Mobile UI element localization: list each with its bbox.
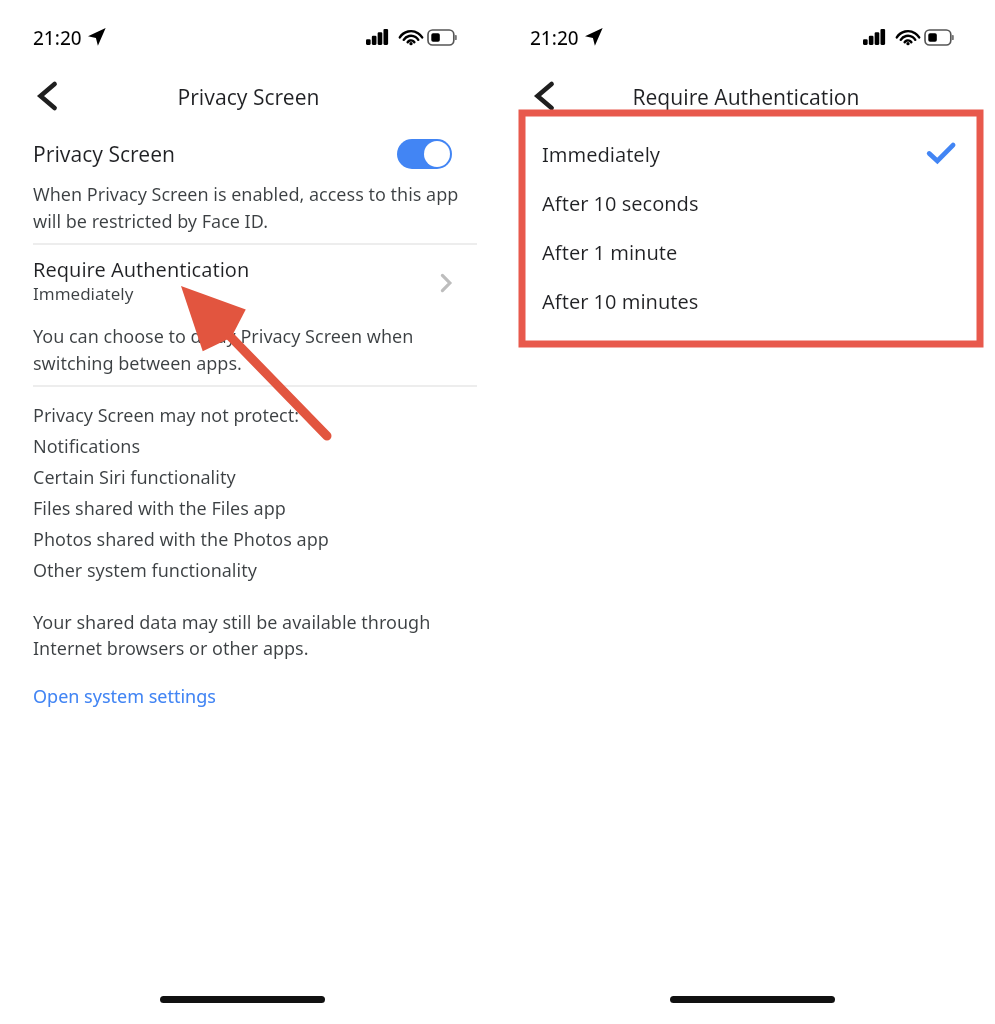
button[interactable]: Back <box>527 78 563 114</box>
staticText: 21:20 <box>33 25 82 51</box>
staticText: Privacy Screen <box>0 83 497 112</box>
staticText: Notifications <box>33 434 141 459</box>
staticText: You can choose to delay Privacy Screen w… <box>33 324 414 375</box>
button[interactable]: Back <box>30 78 66 114</box>
other: Back <box>534 81 556 111</box>
button[interactable]: Require Authentication <box>0 252 497 312</box>
staticText: Other system functionality <box>33 558 257 583</box>
staticText: After 1 minute <box>542 239 678 266</box>
button[interactable]: Open system settings <box>33 684 216 709</box>
staticText: Require Authentication <box>33 256 250 283</box>
button[interactable]: Privacy Screen <box>33 128 452 180</box>
staticText: Immediately <box>33 282 134 305</box>
staticText: After 10 minutes <box>542 288 699 315</box>
staticText: Certain Siri functionality <box>33 465 236 490</box>
staticText: Privacy Screen may not protect: <box>33 403 300 428</box>
staticText: Immediately <box>542 141 660 168</box>
staticText: Open system settings <box>33 684 216 709</box>
staticText: After 10 seconds <box>542 190 699 217</box>
staticText: 21:20 <box>530 25 579 51</box>
staticText: Files shared with the Files app <box>33 496 286 521</box>
other: Back <box>37 81 59 111</box>
button[interactable]: After 10 seconds <box>497 177 995 226</box>
button[interactable]: Immediately <box>497 128 995 177</box>
button[interactable]: After 10 minutes <box>497 275 995 324</box>
staticText: Photos shared with the Photos app <box>33 527 329 552</box>
staticText: When Privacy Screen is enabled, access t… <box>33 182 459 233</box>
button[interactable]: After 1 minute <box>497 226 995 275</box>
staticText: Your shared data may still be available … <box>33 610 431 661</box>
staticText: Require Authentication <box>497 83 995 112</box>
staticText: Privacy Screen <box>33 140 176 169</box>
